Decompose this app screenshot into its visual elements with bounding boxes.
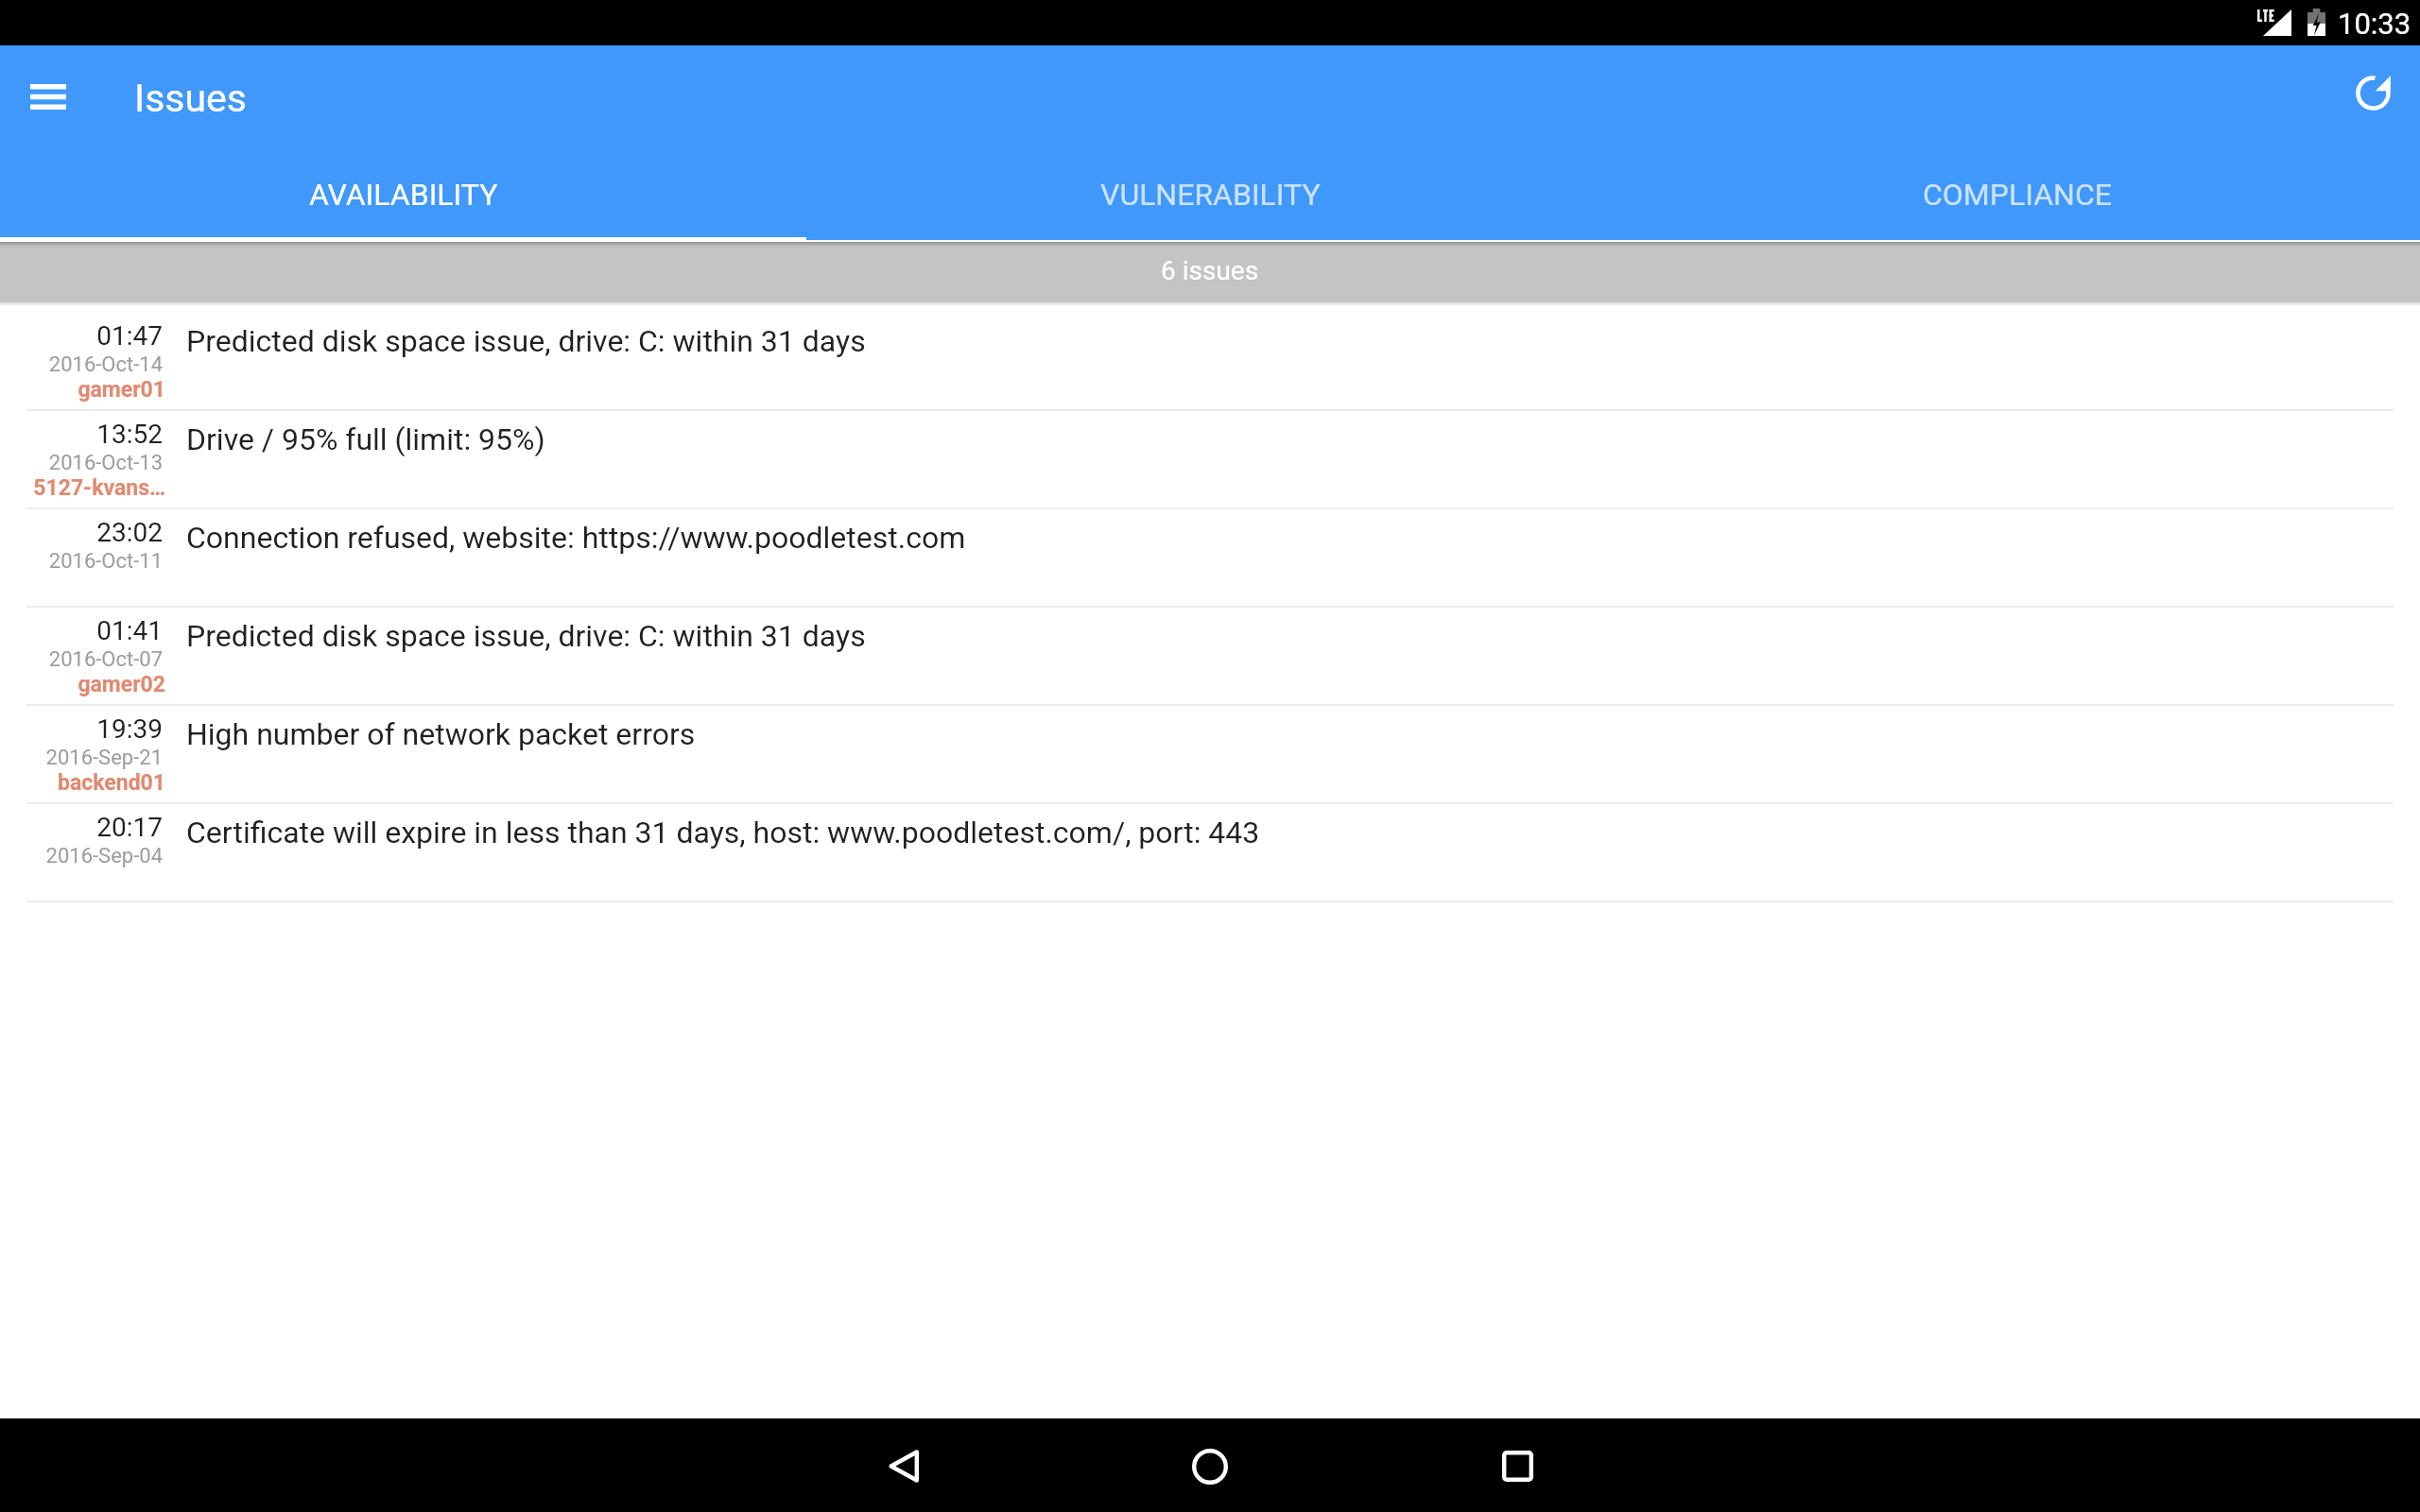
staticText: Drive / 95% full (limit: 95%) [186,421,2420,457]
staticText: 01:41 [0,615,163,646]
staticText: 10:33 [2338,7,2411,41]
button[interactable]: 01:41 [0,606,2420,704]
button[interactable]: Home [1163,1419,1257,1512]
button[interactable]: 01:47 [0,311,2420,409]
staticText: COMPLIANCE [1923,177,2112,213]
staticText: 5127-kvans… [0,475,165,501]
staticText: Predicted disk space issue, drive: C: wi… [186,618,2420,654]
staticText: 2016-Sep-21 [0,746,163,770]
staticText: backend01 [0,770,165,796]
staticText: 2016-Oct-14 [0,352,163,377]
staticText: 23:02 [0,517,163,548]
staticText: 19:39 [0,713,163,745]
button[interactable]: 13:52 [0,409,2420,507]
button[interactable]: 19:39 [0,704,2420,802]
staticText: AVAILABILITY [309,177,498,213]
staticText: gamer02 [0,672,165,697]
button[interactable]: 20:17 [0,802,2420,901]
button[interactable]: 23:02 [0,507,2420,606]
staticText: 20:17 [0,812,163,843]
button[interactable]: AVAILABILITY [0,158,807,240]
staticText: VULNERABILITY [1100,177,1321,213]
staticText: gamer01 [0,377,165,403]
staticText: 13:52 [0,419,163,450]
staticText: 2016-Oct-13 [0,451,163,475]
button[interactable]: Back [856,1419,951,1512]
staticText: Certificate will expire in less than 31 … [186,815,2420,850]
button[interactable]: Recent apps [1470,1419,1564,1512]
staticText: 6 issues [1161,255,1259,286]
staticText: Connection refused, website: https://www… [186,520,2420,556]
button[interactable]: COMPLIANCE [1614,158,2420,240]
staticText: High number of network packet errors [186,716,2420,752]
staticText: 2016-Sep-04 [0,844,163,868]
staticText: 01:47 [0,320,163,352]
staticText: Predicted disk space issue, drive: C: wi… [186,323,2420,359]
button[interactable]: Open navigation drawer [3,51,94,142]
staticText: 2016-Oct-07 [0,647,163,672]
button[interactable]: VULNERABILITY [807,158,1614,240]
staticText: Issues [134,76,247,121]
button[interactable]: Refresh [2325,47,2420,138]
staticText: 2016-Oct-11 [0,549,163,574]
